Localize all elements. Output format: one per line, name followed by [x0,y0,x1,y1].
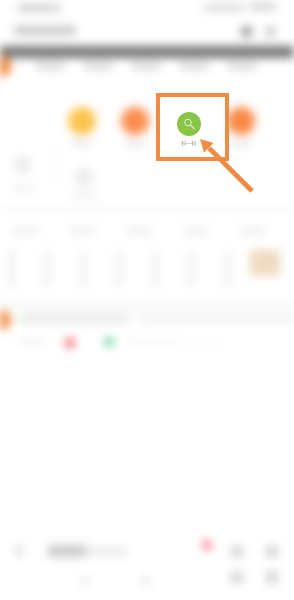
staticText: 扫一扫 [169,140,209,146]
button[interactable]: Scan [156,93,229,161]
other: Scan [177,112,201,136]
